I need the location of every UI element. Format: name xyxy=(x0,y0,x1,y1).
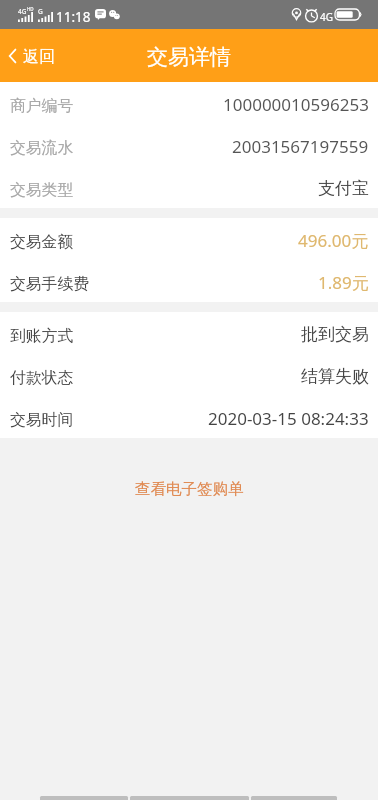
staticText: 1.89元 xyxy=(318,271,369,294)
button[interactable]: 交易流水 xyxy=(0,124,378,166)
button[interactable]: 查看电子签购单 xyxy=(0,438,378,540)
other: 返回 xyxy=(9,49,16,63)
button[interactable]: 返回 xyxy=(0,29,65,82)
staticText: 商户编号 xyxy=(10,96,74,116)
staticText: 100000010596253 xyxy=(223,93,369,116)
button[interactable]: 交易类型 xyxy=(0,166,378,208)
button[interactable]: 到账方式 xyxy=(0,312,378,354)
staticText: 交易金额 xyxy=(10,232,74,252)
button[interactable]: 交易手续费 xyxy=(0,260,378,302)
button[interactable]: 商户编号 xyxy=(0,82,378,124)
staticText: 496.00元 xyxy=(298,229,369,252)
staticText: 返回 xyxy=(23,47,55,67)
staticText: 支付宝 xyxy=(318,178,369,199)
staticText: HD xyxy=(27,6,34,12)
staticText: 11:18 xyxy=(56,8,91,26)
staticText: 交易手续费 xyxy=(10,274,89,294)
staticText: 交易详情 xyxy=(147,44,231,70)
staticText: 批到交易 xyxy=(301,324,369,345)
staticText: 结算失败 xyxy=(301,366,369,387)
staticText: G xyxy=(38,7,43,16)
staticText: 交易时间 xyxy=(10,410,74,430)
button[interactable]: 交易金额 xyxy=(0,218,378,260)
staticText: 20031567197559 xyxy=(232,135,369,158)
staticText: 交易流水 xyxy=(10,138,74,158)
staticText: 2020-03-15 08:24:33 xyxy=(208,407,369,430)
staticText: 交易类型 xyxy=(10,180,74,200)
staticText: 查看电子签购单 xyxy=(135,479,244,499)
button[interactable]: 付款状态 xyxy=(0,354,378,396)
staticText: 付款状态 xyxy=(10,368,74,388)
staticText: 4G xyxy=(320,10,333,24)
staticText: 4G xyxy=(18,7,27,16)
button[interactable]: 交易时间 xyxy=(0,396,378,438)
staticText: 到账方式 xyxy=(10,326,74,346)
